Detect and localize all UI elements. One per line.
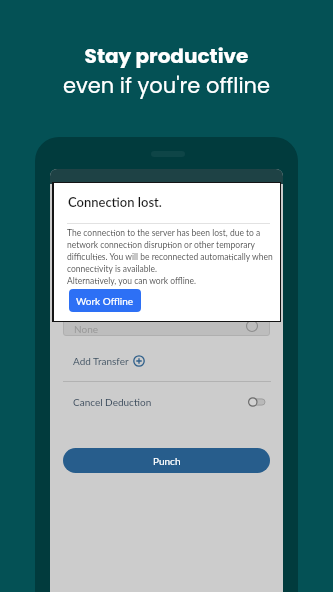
staticText: None [74,323,99,335]
button[interactable]: Work Offline [69,289,141,312]
staticText: even if you're offline [0,71,333,100]
button[interactable]: Cancel Deduction [63,392,271,412]
staticText: Cancel Deduction [73,396,152,408]
staticText: Work Offline [76,295,134,307]
staticText: Stay productive [0,42,333,70]
staticText: Add Transfer [73,355,129,367]
staticText: Punch [153,455,181,467]
button[interactable]: Add Transfer [73,353,145,369]
button[interactable]: None [63,312,270,336]
other: Cancel Deduction toggle [248,396,266,408]
staticText: The connection to the server has been lo… [67,228,273,285]
button[interactable]: Punch [63,448,270,473]
other: Open dropdown [246,320,258,332]
staticText: Connection lost. [68,194,162,210]
